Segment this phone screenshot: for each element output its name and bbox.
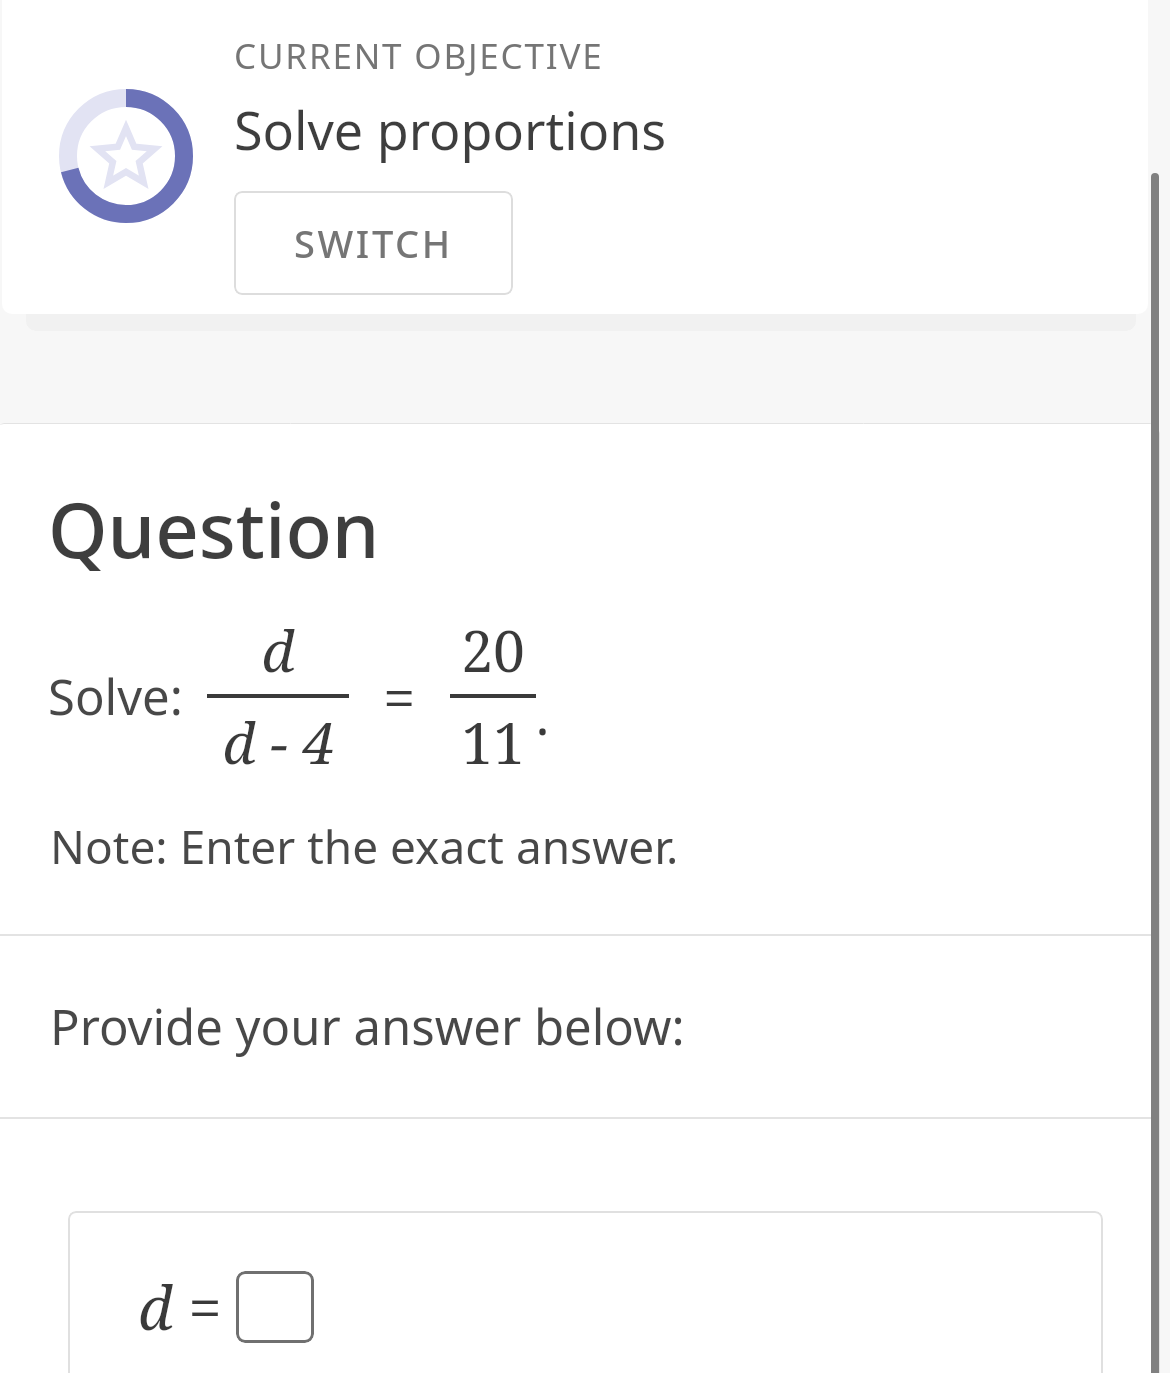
staticText: d − 4	[222, 703, 335, 781]
staticText: d =	[138, 1266, 222, 1348]
button[interactable]: SWITCH	[234, 191, 513, 295]
staticText: Question	[48, 477, 380, 581]
button[interactable]: Objective progress	[56, 86, 196, 226]
staticText: d	[261, 611, 295, 689]
staticText: =	[383, 657, 416, 736]
staticText: 20	[461, 611, 525, 689]
staticText: .	[536, 679, 550, 750]
staticText: Solve proportions	[234, 94, 667, 165]
staticText: Solve:	[48, 663, 183, 730]
button[interactable]: Answer input for d	[236, 1271, 314, 1343]
staticText: Note: Enter the exact answer.	[50, 815, 679, 878]
button[interactable]: d =	[68, 1211, 1103, 1373]
staticText: Provide your answer below:	[50, 993, 685, 1060]
staticText: CURRENT OBJECTIVE	[234, 32, 604, 80]
staticText: SWITCH	[294, 217, 453, 269]
staticText: 11	[461, 703, 525, 781]
